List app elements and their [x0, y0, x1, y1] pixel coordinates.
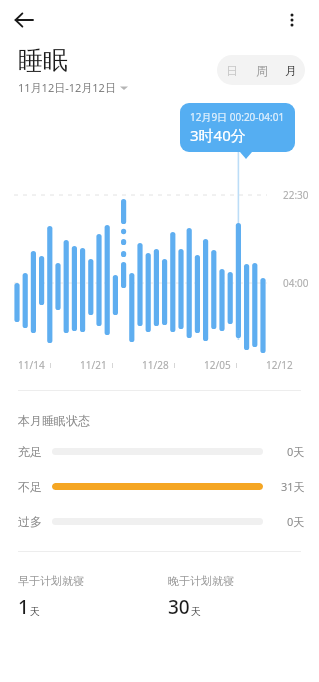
button[interactable]: Back — [8, 4, 40, 36]
staticText: 月 — [285, 63, 297, 78]
staticText: 04:00 — [283, 276, 309, 290]
staticText: 11/21 — [80, 358, 107, 372]
staticText: 12/05 — [204, 358, 231, 372]
staticText: 22:30 — [283, 188, 309, 202]
button[interactable]: 12月9日 00:20-04:01 — [190, 110, 285, 145]
button[interactable]: 月 — [276, 55, 305, 85]
staticText: 本月睡眠状态 — [18, 413, 90, 428]
staticText: 1 — [18, 594, 29, 620]
staticText: 31天 — [281, 479, 305, 494]
staticText: 11/14 — [18, 358, 45, 372]
button[interactable]: 充足 — [18, 444, 305, 459]
staticText: 12/12 — [266, 358, 293, 372]
staticText: 11月12日-12月12日 — [18, 80, 116, 95]
staticText: 日 — [226, 63, 238, 78]
staticText: 11/28 — [142, 358, 169, 372]
button[interactable]: 晚于计划就寝 — [168, 574, 319, 620]
staticText: 0天 — [287, 444, 305, 459]
staticText: 12月9日 00:20-04:01 — [190, 110, 285, 124]
button[interactable]: 11月12日-12月12日 — [18, 80, 128, 95]
button[interactable]: 不足 — [18, 479, 305, 494]
staticText: 0天 — [287, 514, 305, 529]
staticText: 过多 — [18, 514, 52, 529]
button[interactable]: 周 — [247, 55, 276, 85]
button[interactable]: 早于计划就寝 — [18, 574, 168, 620]
staticText: 晚于计划就寝 — [168, 574, 234, 588]
staticText: 充足 — [18, 444, 52, 459]
staticText: 睡眠 — [18, 45, 68, 76]
staticText: 周 — [256, 63, 268, 78]
staticText: 早于计划就寝 — [18, 574, 84, 588]
staticText: 天 — [30, 605, 40, 618]
button[interactable]: More options — [277, 5, 307, 35]
button[interactable]: 日 — [217, 55, 247, 85]
button[interactable]: 过多 — [18, 514, 305, 529]
staticText: 天 — [191, 605, 201, 618]
staticText: 不足 — [18, 479, 52, 494]
staticText: 3时40分 — [190, 125, 246, 145]
staticText: 30 — [168, 594, 190, 620]
